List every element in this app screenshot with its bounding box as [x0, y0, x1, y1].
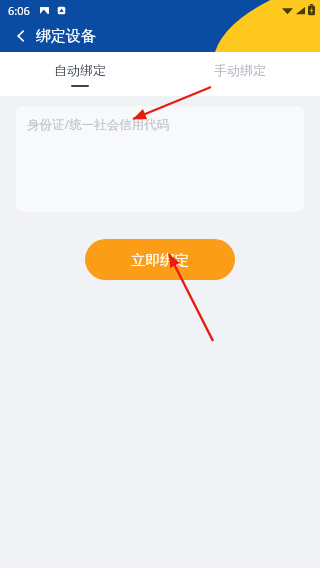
staticText: 立即绑定	[131, 251, 189, 269]
button[interactable]: 自动绑定	[0, 52, 160, 96]
staticText: 绑定设备	[36, 27, 96, 46]
staticText: 身份证/统一社会信用代码	[27, 116, 170, 133]
staticText: 6:06	[8, 3, 30, 18]
staticText: 手动绑定	[214, 62, 266, 78]
button[interactable]: 手动绑定	[160, 52, 320, 96]
button[interactable]: 身份证/统一社会信用代码	[15, 105, 305, 213]
button[interactable]: Back	[8, 23, 34, 49]
staticText: 自动绑定	[54, 62, 106, 78]
button[interactable]: 立即绑定	[85, 239, 235, 280]
